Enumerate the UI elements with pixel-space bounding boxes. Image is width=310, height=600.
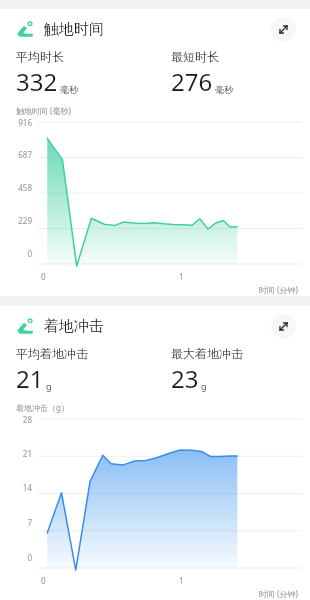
button[interactable]: Expand chart: [271, 314, 296, 339]
staticText: 平均时长: [16, 49, 64, 64]
staticText: 触地时间: [44, 20, 104, 39]
staticText: 时间 (分钟): [259, 588, 298, 599]
staticText: 0: [41, 271, 46, 282]
staticText: 687: [0, 149, 32, 160]
staticText: 触地时间 (毫秒): [16, 105, 71, 116]
staticText: 时间 (分钟): [259, 284, 298, 295]
staticText: 0: [0, 248, 32, 259]
button[interactable]: 着地冲击: [0, 306, 310, 600]
staticText: 229: [0, 215, 32, 226]
staticText: 916: [0, 117, 32, 128]
staticText: 23: [171, 362, 199, 395]
staticText: g: [46, 380, 52, 392]
staticText: 毫秒: [215, 84, 233, 95]
staticText: 1: [179, 575, 184, 586]
staticText: 458: [0, 182, 32, 193]
staticText: 0: [41, 575, 46, 586]
button[interactable]: Expand chart: [271, 17, 296, 42]
staticText: 21: [0, 448, 32, 459]
staticText: 0: [0, 552, 32, 563]
staticText: 最大着地冲击: [171, 346, 243, 361]
staticText: 332: [16, 65, 58, 98]
staticText: 276: [171, 65, 213, 98]
staticText: 28: [0, 414, 32, 425]
staticText: g: [201, 380, 207, 392]
button[interactable]: 触地时间: [0, 9, 310, 296]
staticText: 着地冲击（g）: [16, 402, 69, 413]
staticText: 最短时长: [171, 49, 219, 64]
staticText: 7: [0, 517, 32, 528]
staticText: 毫秒: [60, 84, 78, 95]
staticText: 着地冲击: [44, 317, 104, 336]
staticText: 21: [16, 362, 44, 395]
staticText: 14: [0, 482, 32, 493]
staticText: 1: [179, 271, 184, 282]
staticText: 平均着地冲击: [16, 346, 88, 361]
